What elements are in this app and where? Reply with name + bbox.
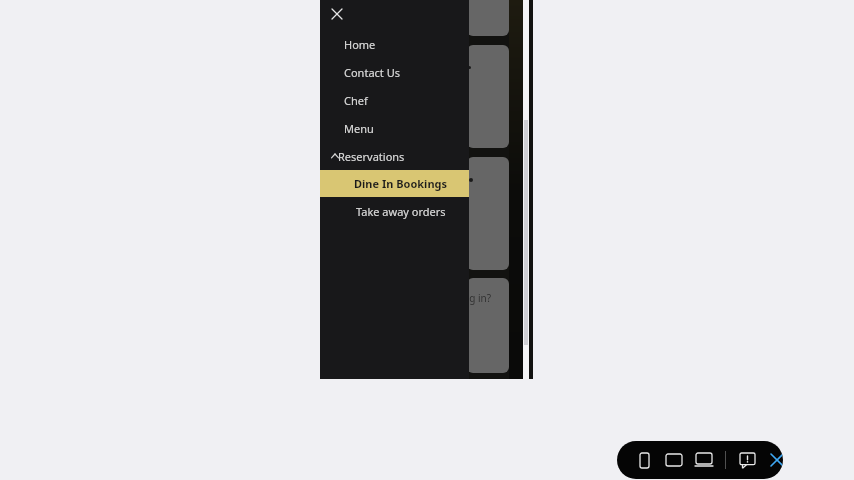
staticText: Take away orders	[356, 204, 446, 219]
button[interactable]: Desktop preview	[691, 447, 717, 473]
staticText: Reservations	[338, 149, 405, 164]
button[interactable]: Reservations	[320, 142, 469, 170]
button[interactable]: Contact Us	[320, 58, 469, 86]
button[interactable]: Dine In Bookings	[320, 170, 469, 197]
staticText: Home	[344, 37, 376, 52]
button[interactable]: Phone preview	[631, 447, 657, 473]
button[interactable]	[467, 45, 509, 148]
button[interactable]: Home	[320, 30, 469, 58]
button[interactable]: Send feedback	[734, 447, 760, 473]
button[interactable]: Chef	[320, 86, 469, 114]
staticText: ng in?	[467, 291, 492, 305]
button[interactable]: Close navigation drawer	[326, 3, 348, 25]
button[interactable]: Close preview toolbar	[770, 447, 783, 473]
button[interactable]	[467, 0, 509, 36]
staticText: Menu	[344, 121, 374, 136]
button[interactable]: Menu	[320, 114, 469, 142]
staticText: Chef	[344, 93, 368, 108]
button[interactable]: Take away orders	[320, 197, 469, 225]
staticText: Contact Us	[344, 65, 400, 80]
button[interactable]: Tablet preview	[661, 447, 687, 473]
button[interactable]: ng in?	[467, 278, 509, 373]
staticText: Dine In Bookings	[354, 176, 448, 191]
button[interactable]	[467, 157, 509, 270]
